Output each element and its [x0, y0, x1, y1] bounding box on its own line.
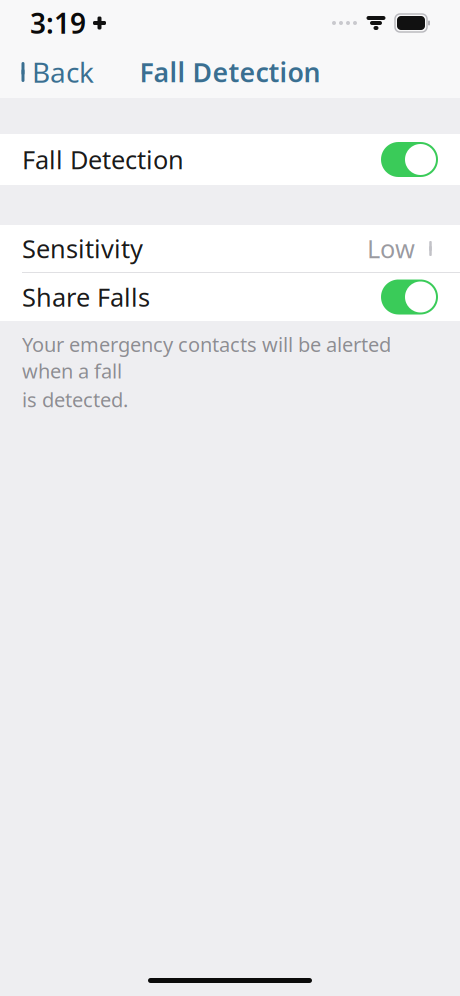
staticText: Fall Detection [139, 54, 320, 90]
staticText: Your emergency contacts will be alerted … [22, 331, 391, 384]
button[interactable]: Fall Detection [0, 134, 460, 185]
button[interactable]: Sensitivity [0, 225, 460, 272]
staticText: Sensitivity [22, 232, 143, 265]
button[interactable]: Share Falls [0, 273, 460, 321]
staticText: is detected. [22, 386, 128, 413]
staticText: Share Falls [22, 280, 150, 314]
staticText: 3:19 [30, 4, 86, 42]
staticText: Low [367, 232, 415, 265]
button[interactable]: Back [0, 47, 108, 97]
staticText: Fall Detection [22, 143, 184, 176]
staticText: Back [32, 53, 94, 91]
